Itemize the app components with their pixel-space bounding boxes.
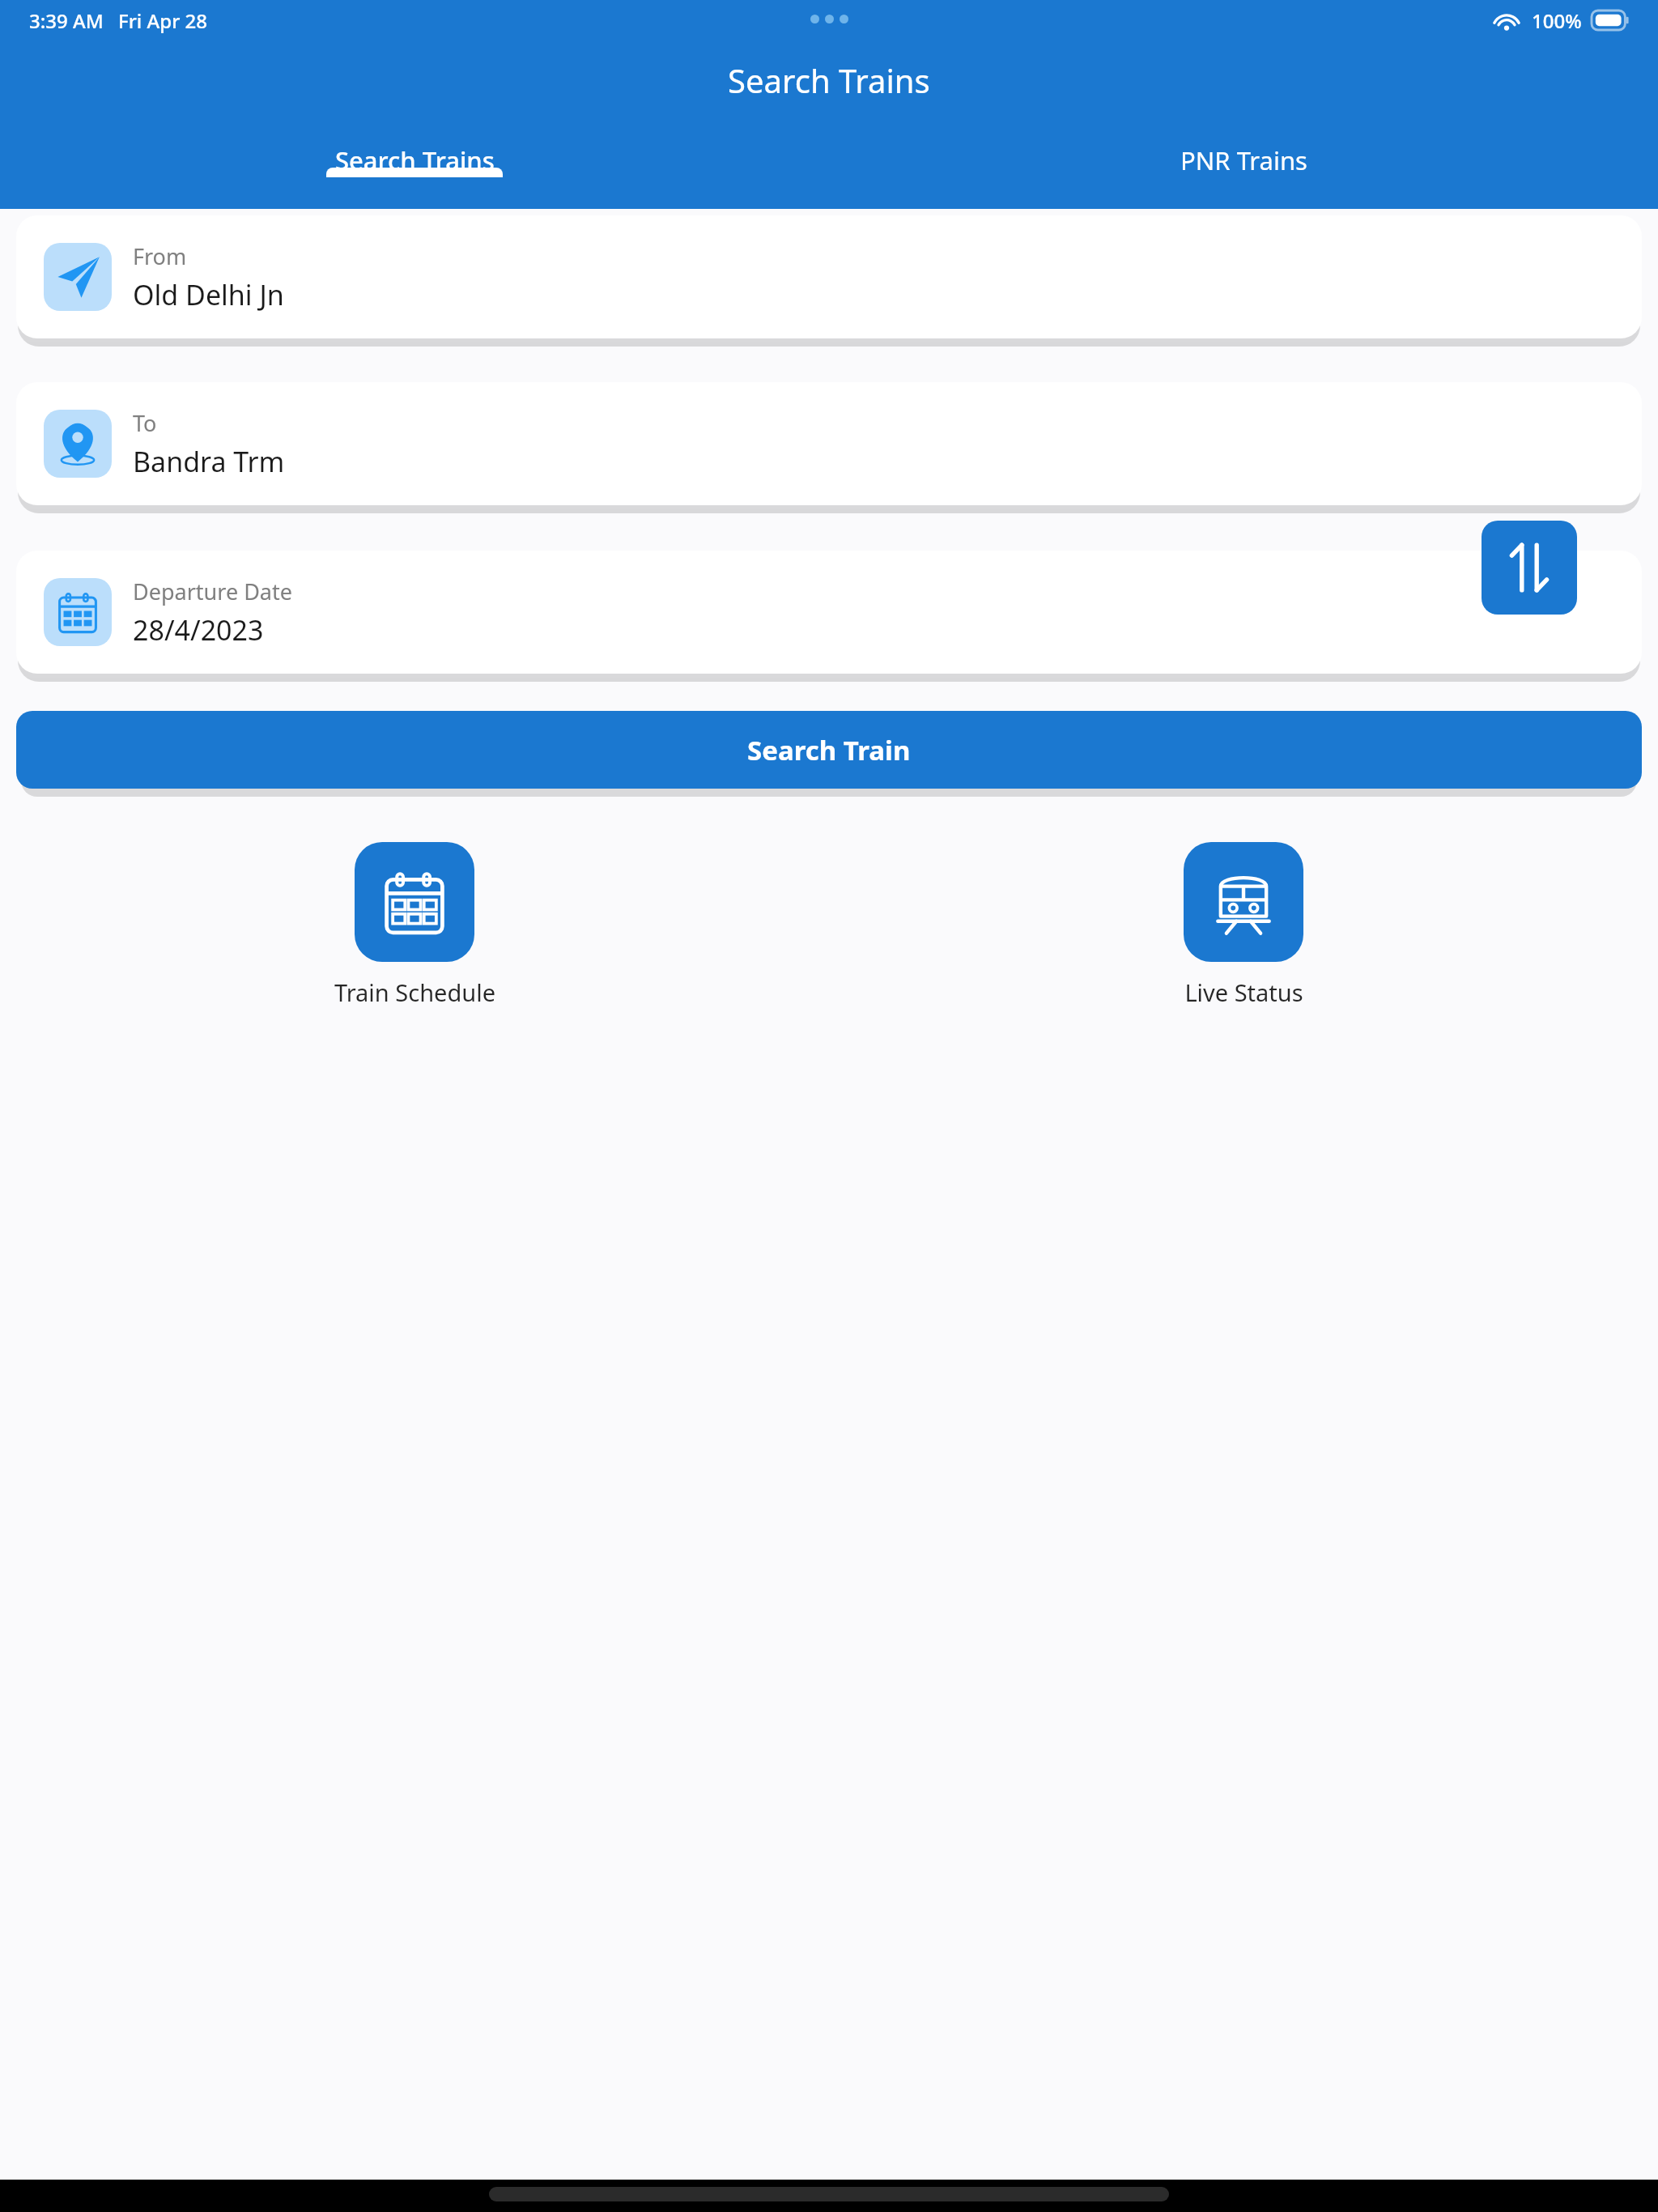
button[interactable]: From [16, 215, 1642, 338]
button[interactable]: Train Schedule [0, 842, 829, 1008]
staticText: Search Trains [728, 58, 930, 102]
staticText: 100% [1532, 7, 1582, 34]
staticText: Live Status [1184, 976, 1303, 1008]
staticText: From [133, 241, 187, 271]
staticText: 3:39 AM [29, 7, 104, 34]
button[interactable]: Swap stations [1482, 521, 1577, 615]
button[interactable]: Live Status [829, 842, 1658, 1008]
staticText: Train Schedule [334, 976, 495, 1008]
button[interactable]: To [16, 382, 1642, 505]
button[interactable]: Departure Date [16, 551, 1642, 674]
staticText: Search Trains [335, 143, 495, 177]
button[interactable]: Search Train [16, 711, 1642, 789]
staticText: Fri Apr 28 [118, 7, 207, 34]
button[interactable]: Search Trains [0, 132, 829, 177]
staticText: Departure Date [133, 576, 292, 606]
staticText: Bandra Trm [133, 443, 285, 480]
button[interactable]: PNR Trains [829, 132, 1658, 177]
staticText: PNR Trains [1180, 143, 1307, 177]
staticText: 28/4/2023 [133, 611, 264, 649]
staticText: Old Delhi Jn [133, 276, 284, 313]
staticText: To [133, 408, 157, 438]
staticText: Search Train [747, 732, 911, 768]
